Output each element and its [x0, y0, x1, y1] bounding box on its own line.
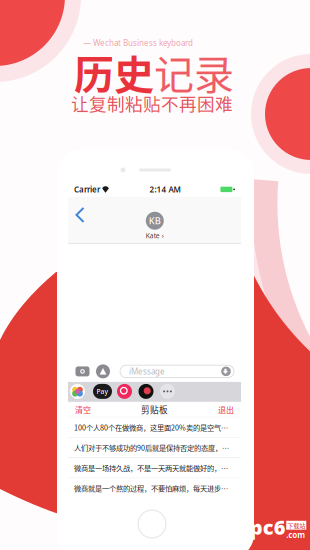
staticText: 100个人80个在做微商，这里面20%卖的是空气，他…	[74, 422, 233, 432]
staticText: Pay	[96, 387, 108, 396]
button[interactable]: 清空	[75, 404, 91, 415]
button[interactable]: More apps	[160, 384, 175, 399]
button[interactable]: Photos	[70, 384, 85, 399]
button[interactable]: 退出	[218, 404, 234, 415]
staticText: 历史	[74, 43, 154, 101]
staticText: .com	[286, 530, 305, 540]
button[interactable]: 人们对于不够成功的90后就是保持否定的态度，说90…	[68, 438, 241, 457]
button[interactable]: KB	[146, 212, 164, 240]
staticText: 清空	[75, 404, 91, 415]
staticText: 2:14 AM	[149, 184, 180, 195]
staticText: 下载站	[287, 521, 305, 530]
button[interactable]: Camera	[72, 363, 92, 380]
staticText: Kate ›	[146, 231, 164, 240]
staticText: 记录	[154, 43, 234, 101]
staticText: 人们对于不够成功的90后就是保持否定的态度，说90…	[74, 442, 233, 453]
staticText: 退出	[218, 404, 234, 415]
button[interactable]: 100个人80个在做微商，这里面20%卖的是空气，他…	[68, 417, 241, 437]
staticText: pc6	[250, 514, 286, 540]
staticText: 剪贴板	[141, 403, 168, 416]
staticText: iMessage	[129, 366, 165, 377]
staticText: 微商是一场持久战，不是一天两天就能做好的，如果…	[74, 463, 233, 473]
staticText: — Wechat Business keyboard	[83, 38, 193, 48]
button[interactable]: Music app	[138, 384, 153, 399]
button[interactable]: Back	[70, 201, 91, 228]
staticText: 微商就是一个熬的过程，不要怕麻烦，每天进步一点…	[74, 483, 233, 493]
staticText: KB	[149, 214, 161, 227]
button[interactable]: Search app	[117, 384, 132, 399]
button[interactable]: Apple Pay	[93, 384, 112, 399]
staticText: 让复制粘贴不再困难	[71, 90, 233, 116]
button[interactable]: 微商是一场持久战，不是一天两天就能做好的，如果…	[68, 458, 241, 478]
button[interactable]: 微商就是一个熬的过程，不要怕麻烦，每天进步一点…	[68, 478, 241, 498]
staticText: Carrier	[74, 184, 100, 195]
button[interactable]: App Store	[94, 362, 112, 380]
